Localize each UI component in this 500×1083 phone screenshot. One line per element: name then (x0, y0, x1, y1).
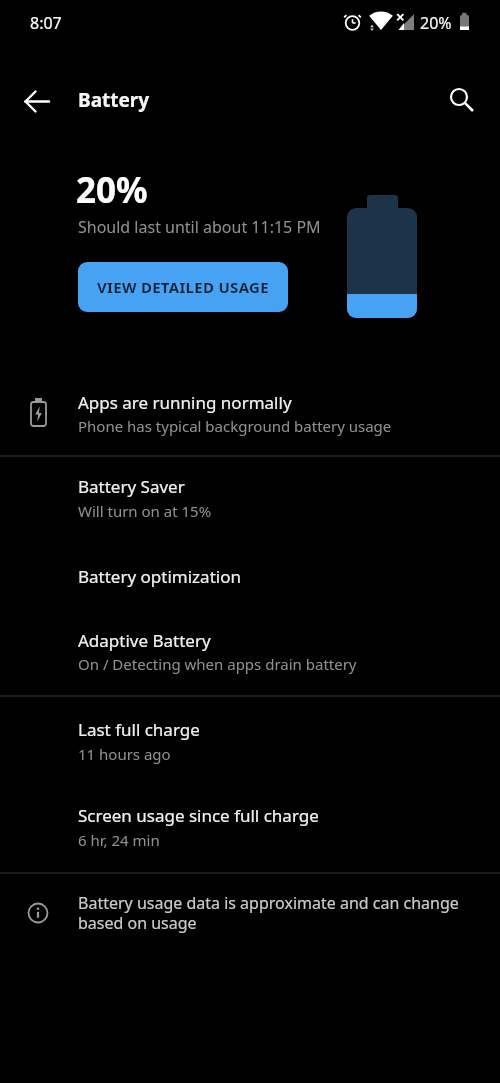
button[interactable]: Apps are running normally (0, 365, 500, 456)
staticText: Battery Saver (78, 475, 185, 498)
staticText: On / Detecting when apps drain battery (78, 654, 357, 674)
staticText: 8:07 (30, 12, 62, 34)
staticText: Apps are running normally (78, 391, 292, 414)
staticText: Battery (78, 87, 150, 113)
button[interactable]: VIEW DETAILED USAGE (78, 262, 288, 312)
staticText: Screen usage since full charge (78, 804, 319, 827)
staticText: Battery optimization (78, 565, 241, 588)
button[interactable]: Battery optimization (0, 545, 500, 609)
staticText: VIEW DETAILED USAGE (97, 277, 269, 297)
staticText: 20% (76, 166, 148, 214)
button[interactable] (437, 75, 483, 121)
button[interactable]: Battery Saver (0, 462, 500, 532)
staticText: 6 hr, 24 min (78, 830, 160, 850)
staticText: Battery usage data is approximate and ca… (78, 892, 459, 933)
staticText: Should last until about 11:15 PM (78, 216, 321, 238)
staticText: Last full charge (78, 718, 200, 741)
staticText: Adaptive Battery (78, 629, 211, 652)
button[interactable]: Adaptive Battery (0, 612, 500, 686)
staticText: 20% (420, 12, 452, 34)
staticText: Will turn on at 15% (78, 501, 212, 521)
button[interactable]: Screen usage since full charge (0, 788, 500, 862)
button[interactable]: Last full charge (0, 700, 500, 776)
button[interactable] (15, 79, 60, 124)
staticText: Phone has typical background battery usa… (78, 416, 392, 436)
staticText: 11 hours ago (78, 744, 171, 764)
